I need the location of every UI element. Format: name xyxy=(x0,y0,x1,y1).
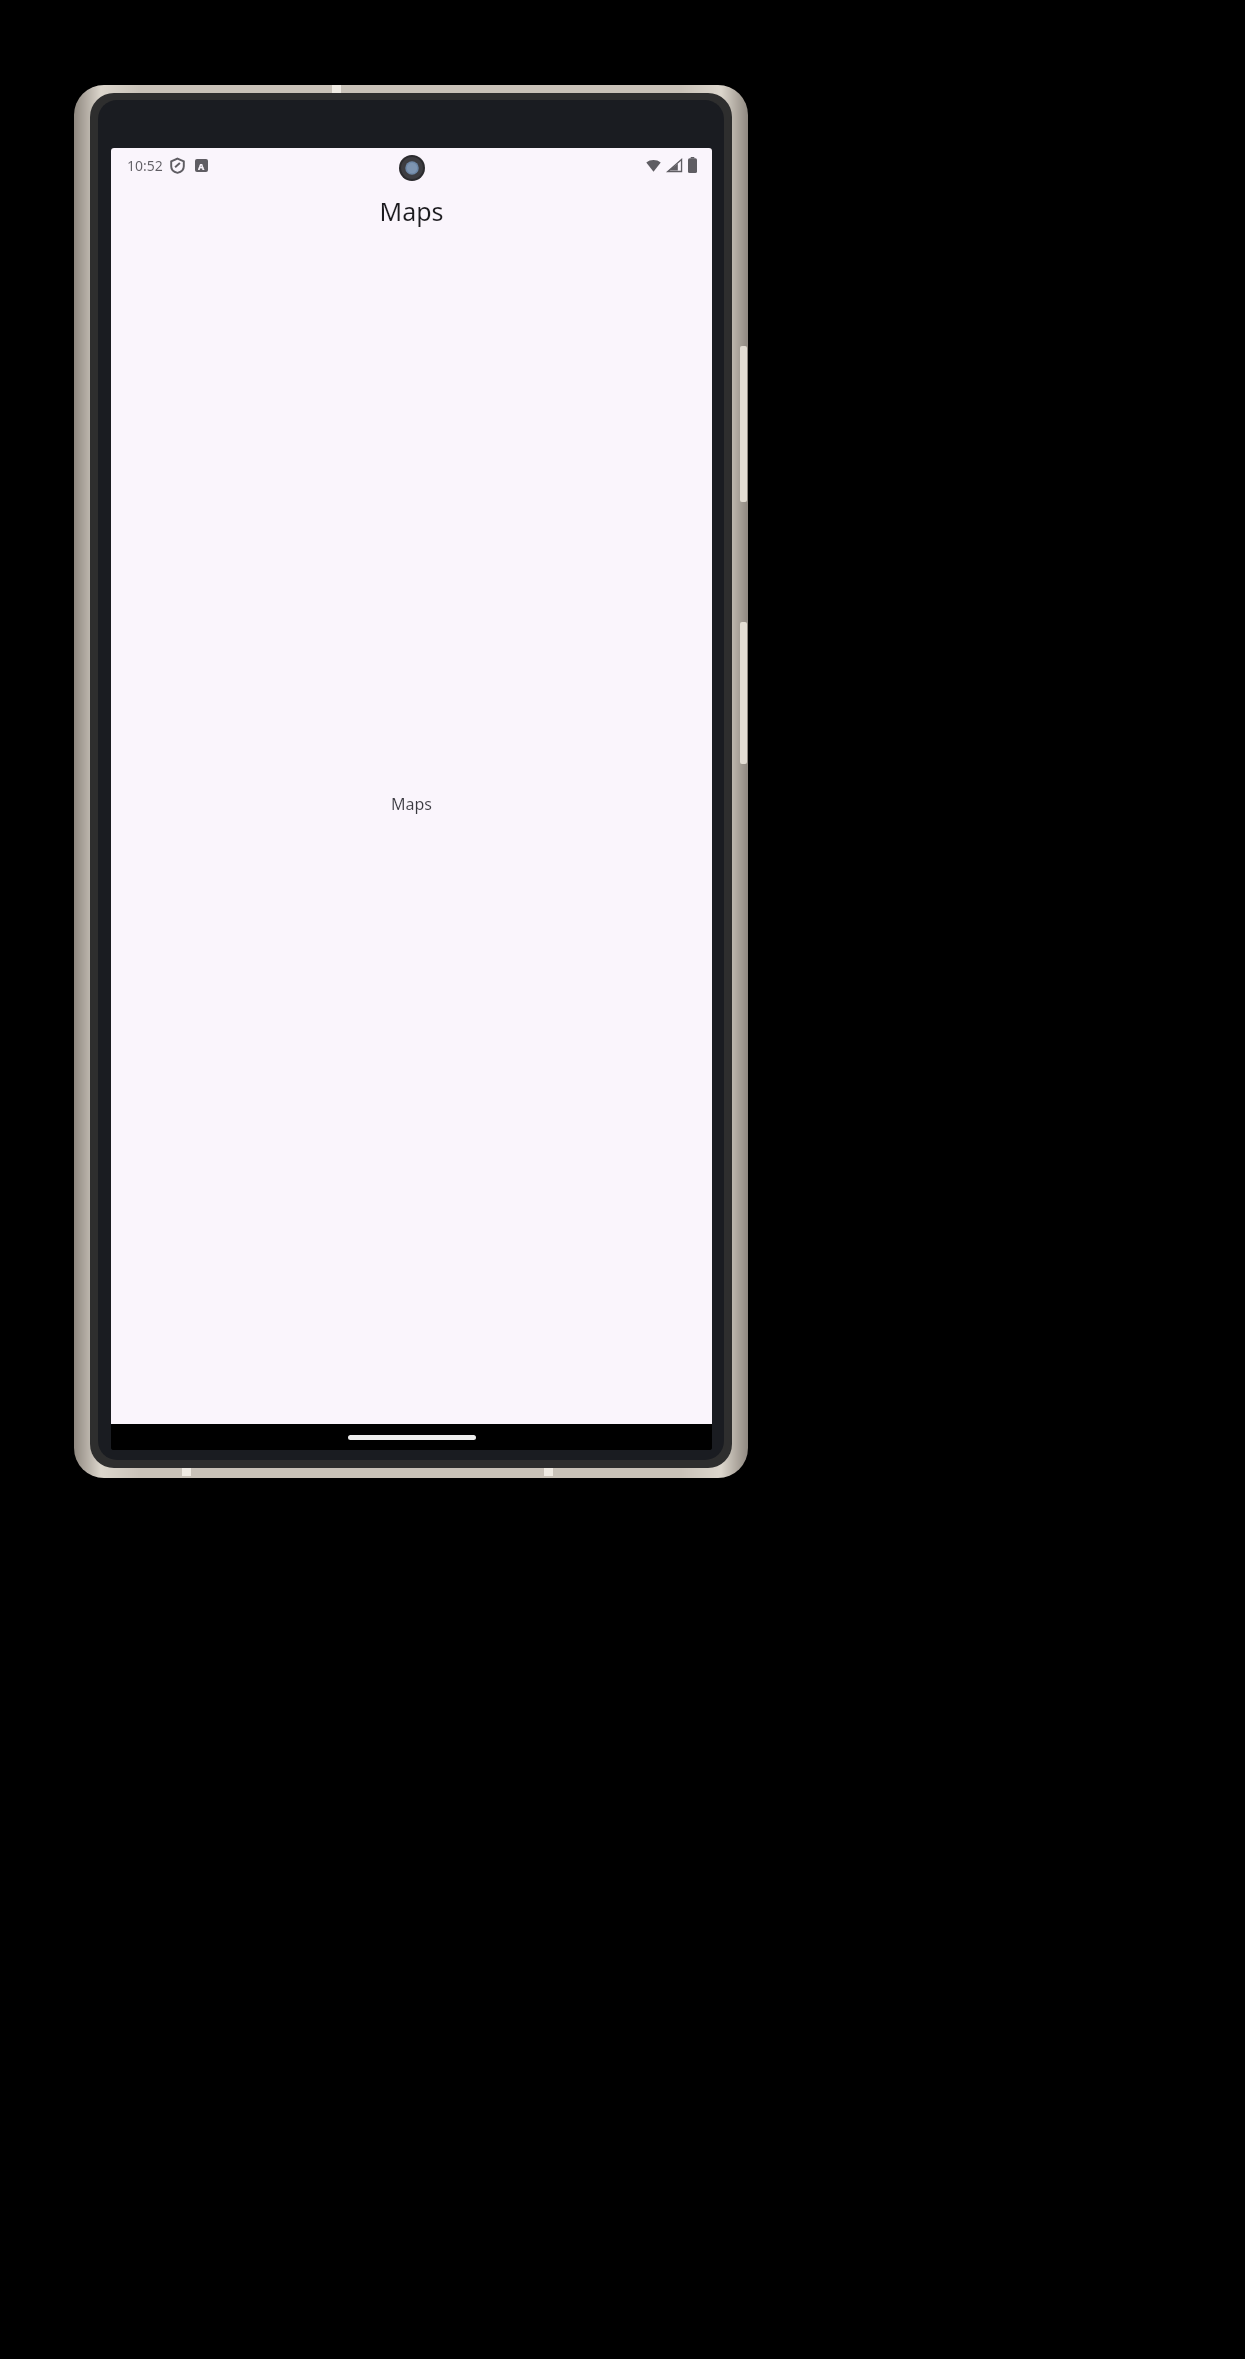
staticText: A xyxy=(198,160,205,172)
staticText: Maps xyxy=(391,793,432,815)
button[interactable]: Home gesture xyxy=(348,1435,476,1440)
staticText: 10:52 xyxy=(127,156,163,175)
staticText: Maps xyxy=(379,194,444,228)
